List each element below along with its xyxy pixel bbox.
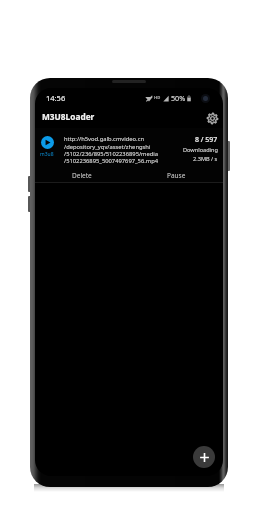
staticText: 2.3MB / s: [193, 155, 218, 163]
staticText: m3u8: [40, 151, 54, 158]
staticText: Pause: [167, 171, 186, 180]
button[interactable]: Delete: [35, 168, 129, 182]
staticText: http://h5vod.galb.cmvideo.cn /depository…: [64, 135, 159, 165]
button[interactable]: Pause: [129, 168, 223, 182]
staticText: 50%: [171, 93, 186, 103]
button[interactable]: Settings: [203, 109, 221, 127]
staticText: 14:56: [46, 93, 66, 103]
button[interactable]: Add download: [193, 446, 215, 468]
staticText: HD: [154, 95, 161, 101]
staticText: 8 / 597: [195, 135, 218, 145]
button[interactable]: m3u8: [35, 128, 223, 183]
staticText: Downloading: [183, 146, 218, 154]
staticText: Delete: [72, 171, 92, 180]
staticText: M3U8Loader: [42, 111, 95, 122]
